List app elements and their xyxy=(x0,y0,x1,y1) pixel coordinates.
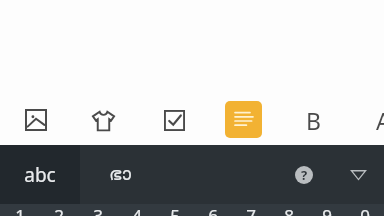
staticText: 3 xyxy=(93,204,103,216)
button[interactable]: Stickers xyxy=(86,103,120,137)
button[interactable]: 1 xyxy=(0,204,39,216)
staticText: B xyxy=(306,105,321,136)
button[interactable]: 8 xyxy=(270,204,308,216)
staticText: A xyxy=(376,105,384,136)
button[interactable]: abc xyxy=(0,145,80,204)
staticText: abc xyxy=(24,162,56,188)
button[interactable]: Bold xyxy=(296,103,330,137)
staticText: 9 xyxy=(322,204,332,216)
staticText: 0 xyxy=(360,204,370,216)
button[interactable]: Hide keyboard xyxy=(340,145,376,204)
staticText: 7 xyxy=(246,204,256,216)
staticText: 5 xyxy=(170,204,180,216)
staticText: 4 xyxy=(132,204,142,216)
staticText: 8 xyxy=(284,204,294,216)
button[interactable]: Text style xyxy=(366,103,384,137)
button[interactable]: 9 xyxy=(308,204,346,216)
button[interactable]: Help xyxy=(286,145,322,204)
staticText: 2 xyxy=(54,204,64,216)
button[interactable]: 3 xyxy=(78,204,117,216)
button[interactable]: 7 xyxy=(232,204,270,216)
button[interactable]: 4 xyxy=(117,204,156,216)
button[interactable]: 5 xyxy=(156,204,194,216)
button[interactable]: ഭാ xyxy=(80,145,160,204)
staticText: 1 xyxy=(15,204,25,216)
staticText: ? xyxy=(301,166,308,184)
button[interactable]: Checklist xyxy=(157,103,191,137)
button[interactable]: 2 xyxy=(39,204,78,216)
staticText: ഭാ xyxy=(109,165,131,184)
button[interactable]: Insert image xyxy=(19,103,53,137)
button[interactable]: 0 xyxy=(346,204,384,216)
button[interactable]: Notes xyxy=(225,101,262,138)
staticText: 6 xyxy=(208,204,218,216)
button[interactable]: 6 xyxy=(194,204,232,216)
